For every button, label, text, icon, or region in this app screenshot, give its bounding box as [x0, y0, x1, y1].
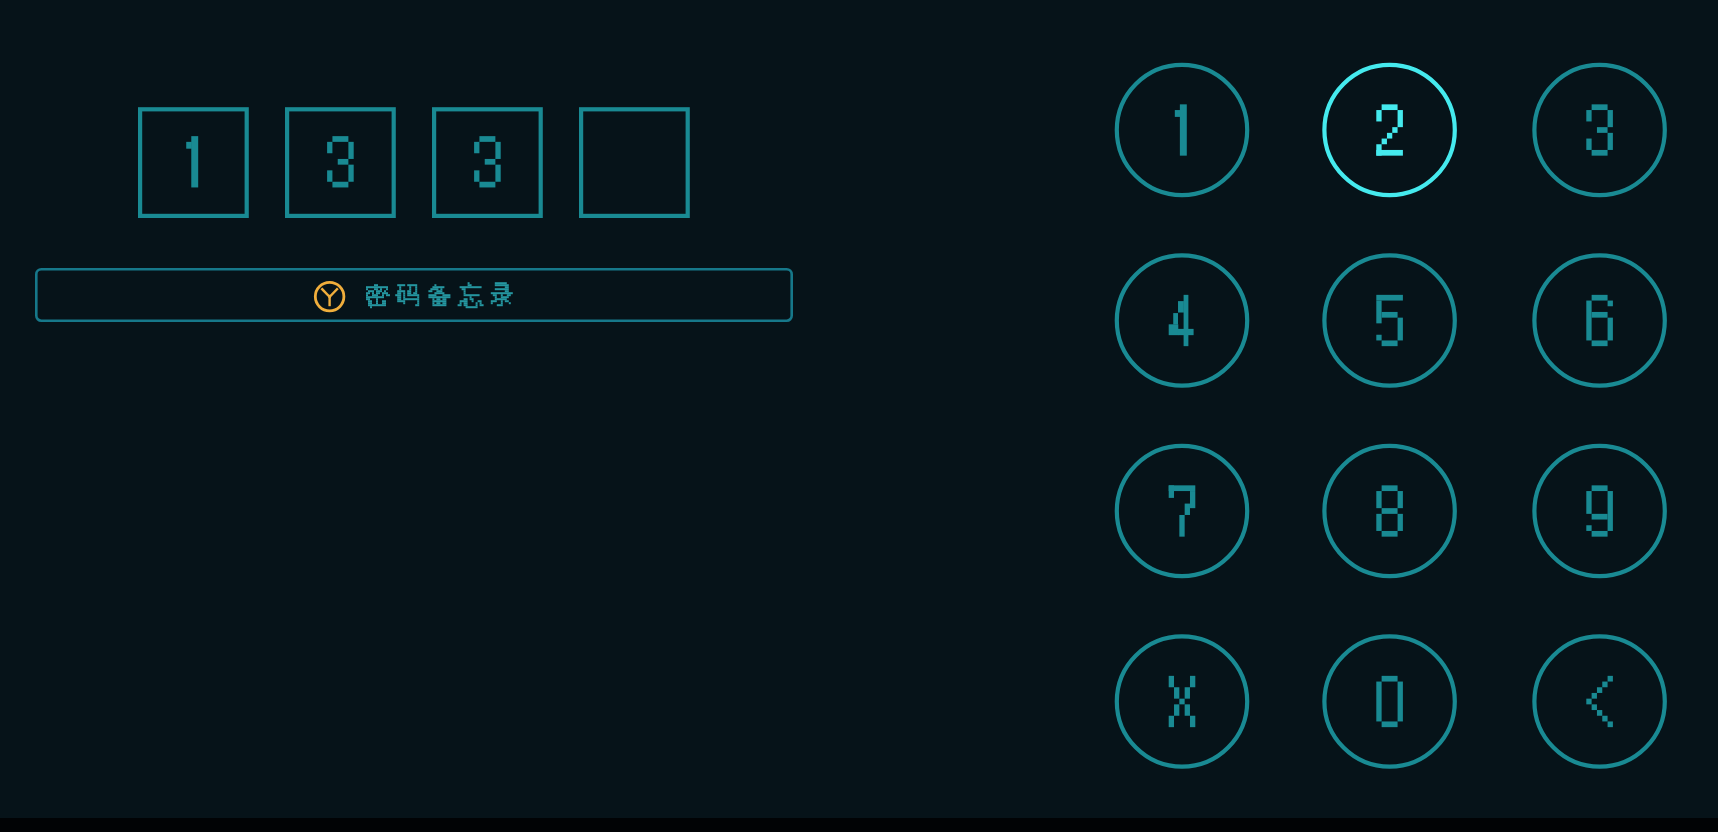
button[interactable]: 2	[1322, 63, 1457, 198]
button[interactable]: 5	[1322, 253, 1457, 388]
button[interactable]: 3	[1532, 63, 1667, 198]
button[interactable]: 0	[1322, 634, 1457, 769]
button[interactable]: PIN digit 3	[432, 107, 543, 218]
button[interactable]: PIN digit 1	[138, 107, 249, 218]
button[interactable]: 密码备忘录	[35, 268, 793, 322]
button[interactable]: 8	[1322, 444, 1457, 579]
button[interactable]: 6	[1532, 253, 1667, 388]
button[interactable]: 7	[1115, 444, 1250, 579]
button[interactable]: 9	[1532, 444, 1667, 579]
button[interactable]: PIN digit 2	[285, 107, 396, 218]
button[interactable]: 4	[1115, 253, 1250, 388]
button[interactable]: 1	[1115, 63, 1250, 198]
button[interactable]: Backspace	[1532, 634, 1667, 769]
button[interactable]: Clear	[1115, 634, 1250, 769]
button[interactable]: PIN digit 4	[579, 107, 690, 218]
